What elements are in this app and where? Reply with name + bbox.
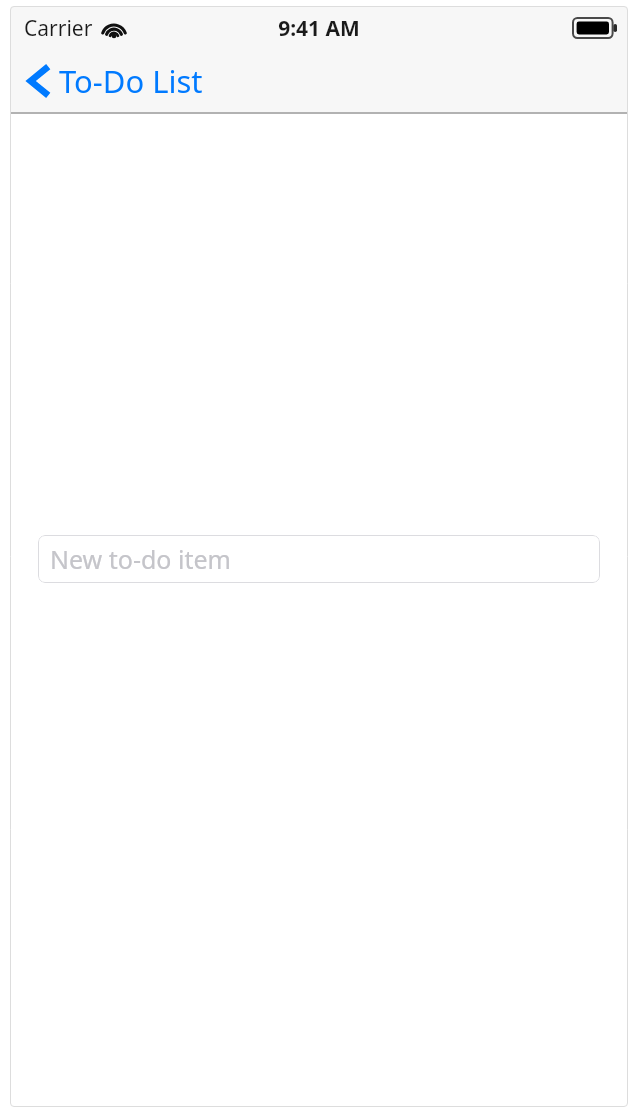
staticText: New to-do item (50, 542, 231, 576)
other: Back (28, 63, 50, 99)
staticText: To-Do List (59, 60, 203, 102)
staticText: Carrier (24, 14, 93, 43)
button[interactable]: New to-do item (38, 535, 600, 583)
button[interactable]: Back (28, 60, 203, 102)
staticText: 9:41 AM (278, 14, 360, 43)
